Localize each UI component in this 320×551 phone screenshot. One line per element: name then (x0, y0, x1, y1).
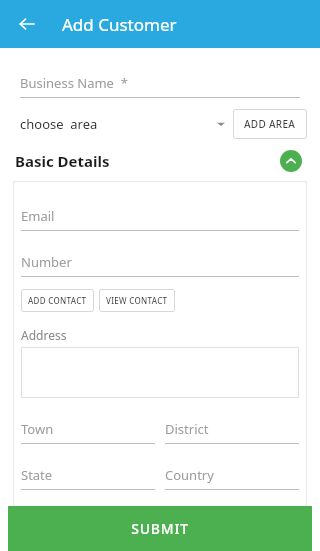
button[interactable]: ADD AREA (233, 109, 307, 139)
button[interactable]: Town (21, 420, 155, 444)
staticText: State (21, 466, 53, 484)
staticText: Number (21, 253, 72, 271)
button[interactable]: Country (165, 466, 299, 490)
staticText: ADD AREA (244, 117, 296, 131)
button[interactable]: Collapse Basic Details (280, 150, 302, 172)
button[interactable]: Email (21, 207, 299, 231)
button[interactable] (21, 347, 299, 398)
button[interactable]: SUBMIT (8, 506, 312, 551)
button[interactable]: ADD CONTACT (21, 289, 94, 312)
button[interactable]: choose area (20, 115, 233, 133)
button[interactable]: State (21, 466, 155, 490)
staticText: Email (21, 207, 55, 225)
staticText: choose area (20, 115, 98, 133)
button[interactable]: VIEW CONTACT (99, 289, 175, 312)
button[interactable]: Number (21, 253, 299, 277)
staticText: SUBMIT (131, 519, 189, 538)
staticText: Business Name * (20, 74, 128, 92)
staticText: Town (21, 420, 54, 438)
staticText: District (165, 420, 209, 438)
button[interactable]: Back (12, 9, 42, 39)
button[interactable]: District (165, 420, 299, 444)
staticText: VIEW CONTACT (106, 295, 168, 306)
staticText: ADD CONTACT (28, 295, 87, 306)
staticText: Add Customer (62, 13, 177, 36)
staticText: Country (165, 466, 214, 484)
button[interactable]: Business Name * (20, 74, 300, 98)
staticText: Basic Details (15, 151, 110, 171)
staticText: Address (21, 327, 67, 343)
